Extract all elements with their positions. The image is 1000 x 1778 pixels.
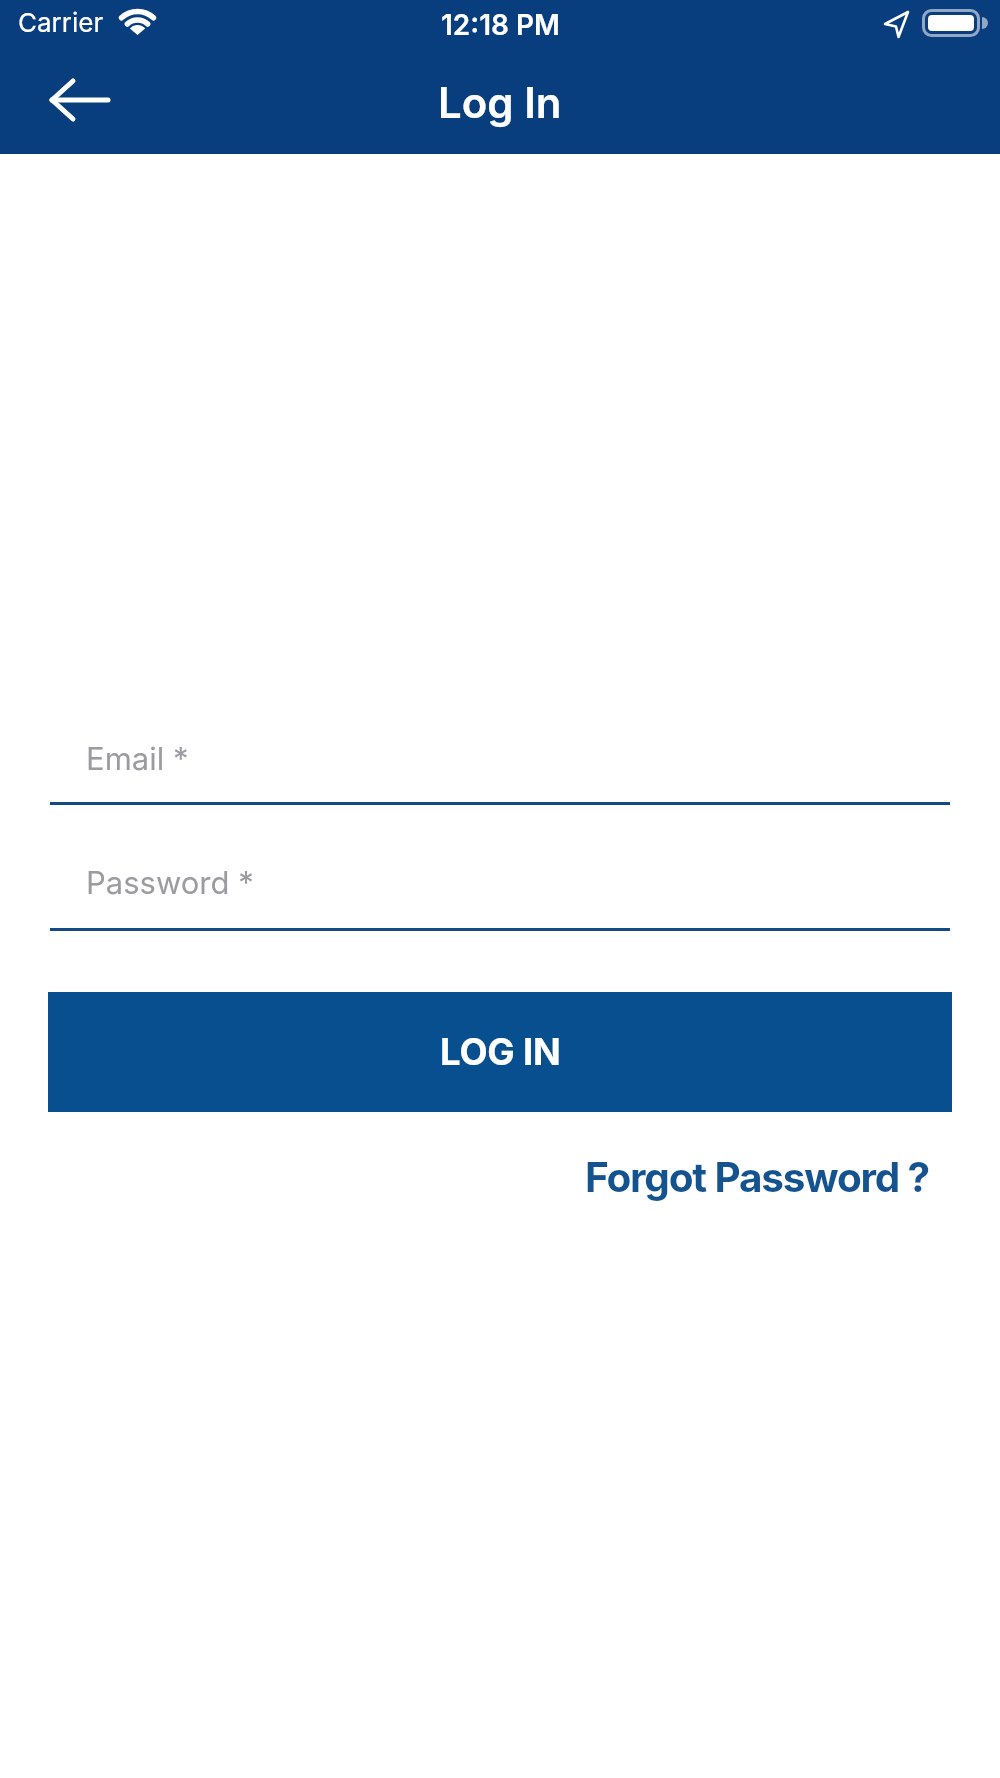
button[interactable]: Email * [50, 704, 950, 805]
staticText: Password * [86, 864, 254, 902]
button[interactable]: LOG IN [48, 992, 952, 1112]
staticText: Log In [438, 77, 562, 128]
staticText: LOG IN [440, 1030, 561, 1074]
staticText: Carrier [18, 7, 104, 38]
button[interactable]: Password * [50, 829, 950, 931]
button[interactable]: Forgot Password ? [585, 1153, 930, 1202]
staticText: 12:18 PM [441, 8, 560, 42]
staticText: Forgot Password ? [585, 1153, 930, 1202]
button[interactable] [28, 60, 132, 140]
staticText: Email * [86, 740, 189, 778]
